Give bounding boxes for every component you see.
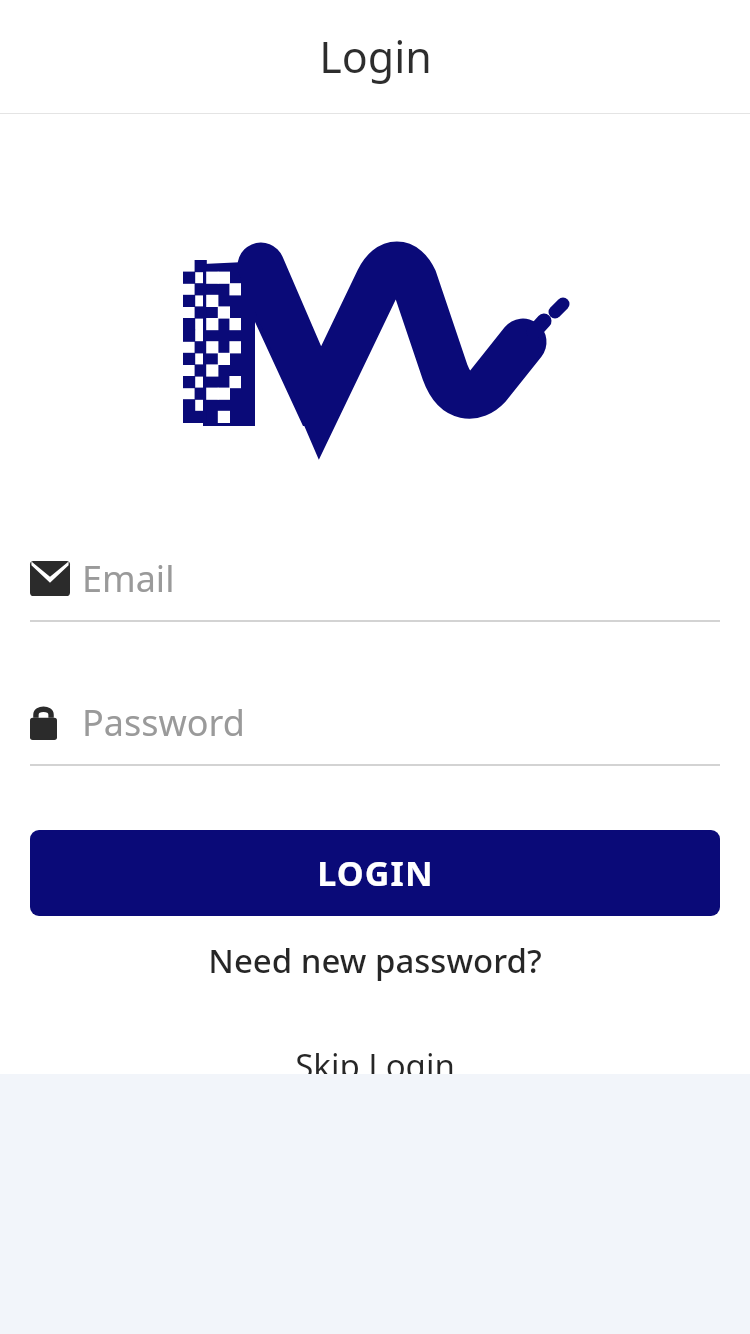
button[interactable]: Skip Login	[0, 1043, 750, 1074]
staticText: LOGIN	[317, 850, 434, 896]
staticText: Login	[319, 27, 432, 86]
other: App logo	[183, 260, 568, 426]
staticText: Skip Login	[295, 1043, 455, 1074]
other: Email	[30, 561, 70, 596]
button[interactable]: Password	[30, 692, 720, 766]
button[interactable]: Email	[30, 548, 720, 622]
other: Password	[30, 704, 57, 740]
staticText: Password	[82, 698, 245, 747]
staticText: Email	[82, 554, 175, 603]
button[interactable]: LOGIN	[30, 830, 720, 916]
staticText: Need new password?	[208, 938, 542, 983]
button[interactable]: Need new password?	[0, 938, 750, 983]
